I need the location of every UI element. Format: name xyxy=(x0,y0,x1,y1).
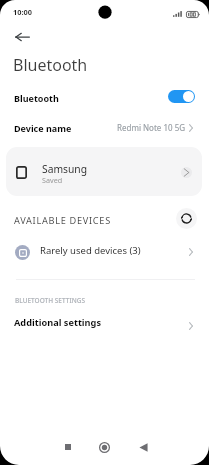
button[interactable]: Device details xyxy=(181,167,192,178)
button[interactable]: Samsung xyxy=(6,147,202,196)
staticText: Device name xyxy=(14,122,72,134)
staticText: Rarely used devices (3) xyxy=(40,244,141,257)
staticText: BLUETOOTH SETTINGS xyxy=(15,296,86,305)
staticText: Bluetooth xyxy=(13,54,88,76)
button[interactable]: Additional settings xyxy=(0,310,209,336)
staticText: Redmi Note 10 5G xyxy=(117,122,186,133)
staticText: 10:00 xyxy=(13,7,32,17)
staticText: AVAILABLE DEVICES xyxy=(14,214,111,227)
staticText: Bluetooth xyxy=(14,92,59,104)
button[interactable]: Back xyxy=(9,23,36,50)
button[interactable]: Refresh xyxy=(176,208,197,229)
button[interactable]: Recents xyxy=(57,436,79,458)
button[interactable]: Device name xyxy=(0,116,209,140)
staticText: Saved xyxy=(42,175,63,185)
staticText: Additional settings xyxy=(14,316,102,329)
button[interactable]: Back xyxy=(132,436,154,458)
staticText: Samsung xyxy=(42,162,88,176)
button[interactable]: Bluetooth xyxy=(0,86,209,112)
button[interactable]: Rarely used devices (3) xyxy=(0,236,209,266)
button[interactable]: Home xyxy=(93,436,115,458)
